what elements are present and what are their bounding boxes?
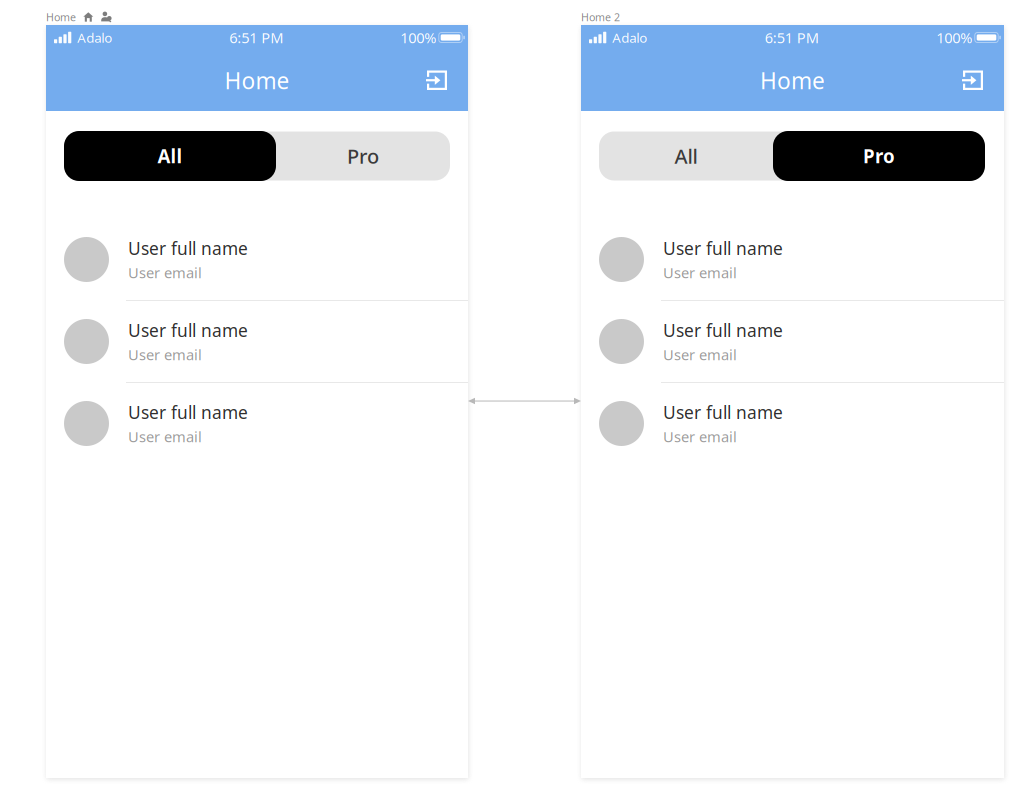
staticText: 100% xyxy=(400,28,436,47)
staticText: All xyxy=(157,144,182,168)
staticText: 6:51 PM xyxy=(229,28,283,47)
staticText: Home xyxy=(224,65,289,95)
button[interactable]: Log out xyxy=(425,70,448,91)
staticText: User full name xyxy=(128,401,248,424)
button[interactable]: Pro xyxy=(773,131,985,180)
staticText: User email xyxy=(663,427,737,446)
staticText: 6:51 PM xyxy=(765,28,819,47)
button[interactable]: All xyxy=(64,131,276,180)
button[interactable]: User full name xyxy=(581,301,1004,382)
staticText: Home 2 xyxy=(581,10,620,24)
button[interactable]: User full name xyxy=(46,219,468,300)
staticText: User email xyxy=(663,263,737,282)
button[interactable]: User full name xyxy=(46,383,468,464)
staticText: Home xyxy=(760,65,825,95)
staticText: User email xyxy=(128,427,202,446)
button[interactable]: User full name xyxy=(581,219,1004,300)
staticText: Adalo xyxy=(612,29,647,46)
staticText: 100% xyxy=(936,28,972,47)
button[interactable]: Log out xyxy=(961,70,984,91)
staticText: User full name xyxy=(128,319,248,342)
staticText: User full name xyxy=(663,319,783,342)
staticText: User full name xyxy=(663,237,783,260)
button[interactable]: User full name xyxy=(46,301,468,382)
staticText: User email xyxy=(128,345,202,364)
staticText: Pro xyxy=(347,143,379,169)
staticText: User full name xyxy=(663,401,783,424)
button[interactable]: All xyxy=(599,131,773,180)
staticText: User email xyxy=(663,345,737,364)
staticText: Pro xyxy=(863,144,895,168)
staticText: Home xyxy=(46,10,76,24)
staticText: All xyxy=(674,143,697,169)
button[interactable]: Pro xyxy=(276,131,450,180)
staticText: User email xyxy=(128,263,202,282)
staticText: Adalo xyxy=(77,29,112,46)
staticText: User full name xyxy=(128,237,248,260)
button[interactable]: User full name xyxy=(581,383,1004,464)
